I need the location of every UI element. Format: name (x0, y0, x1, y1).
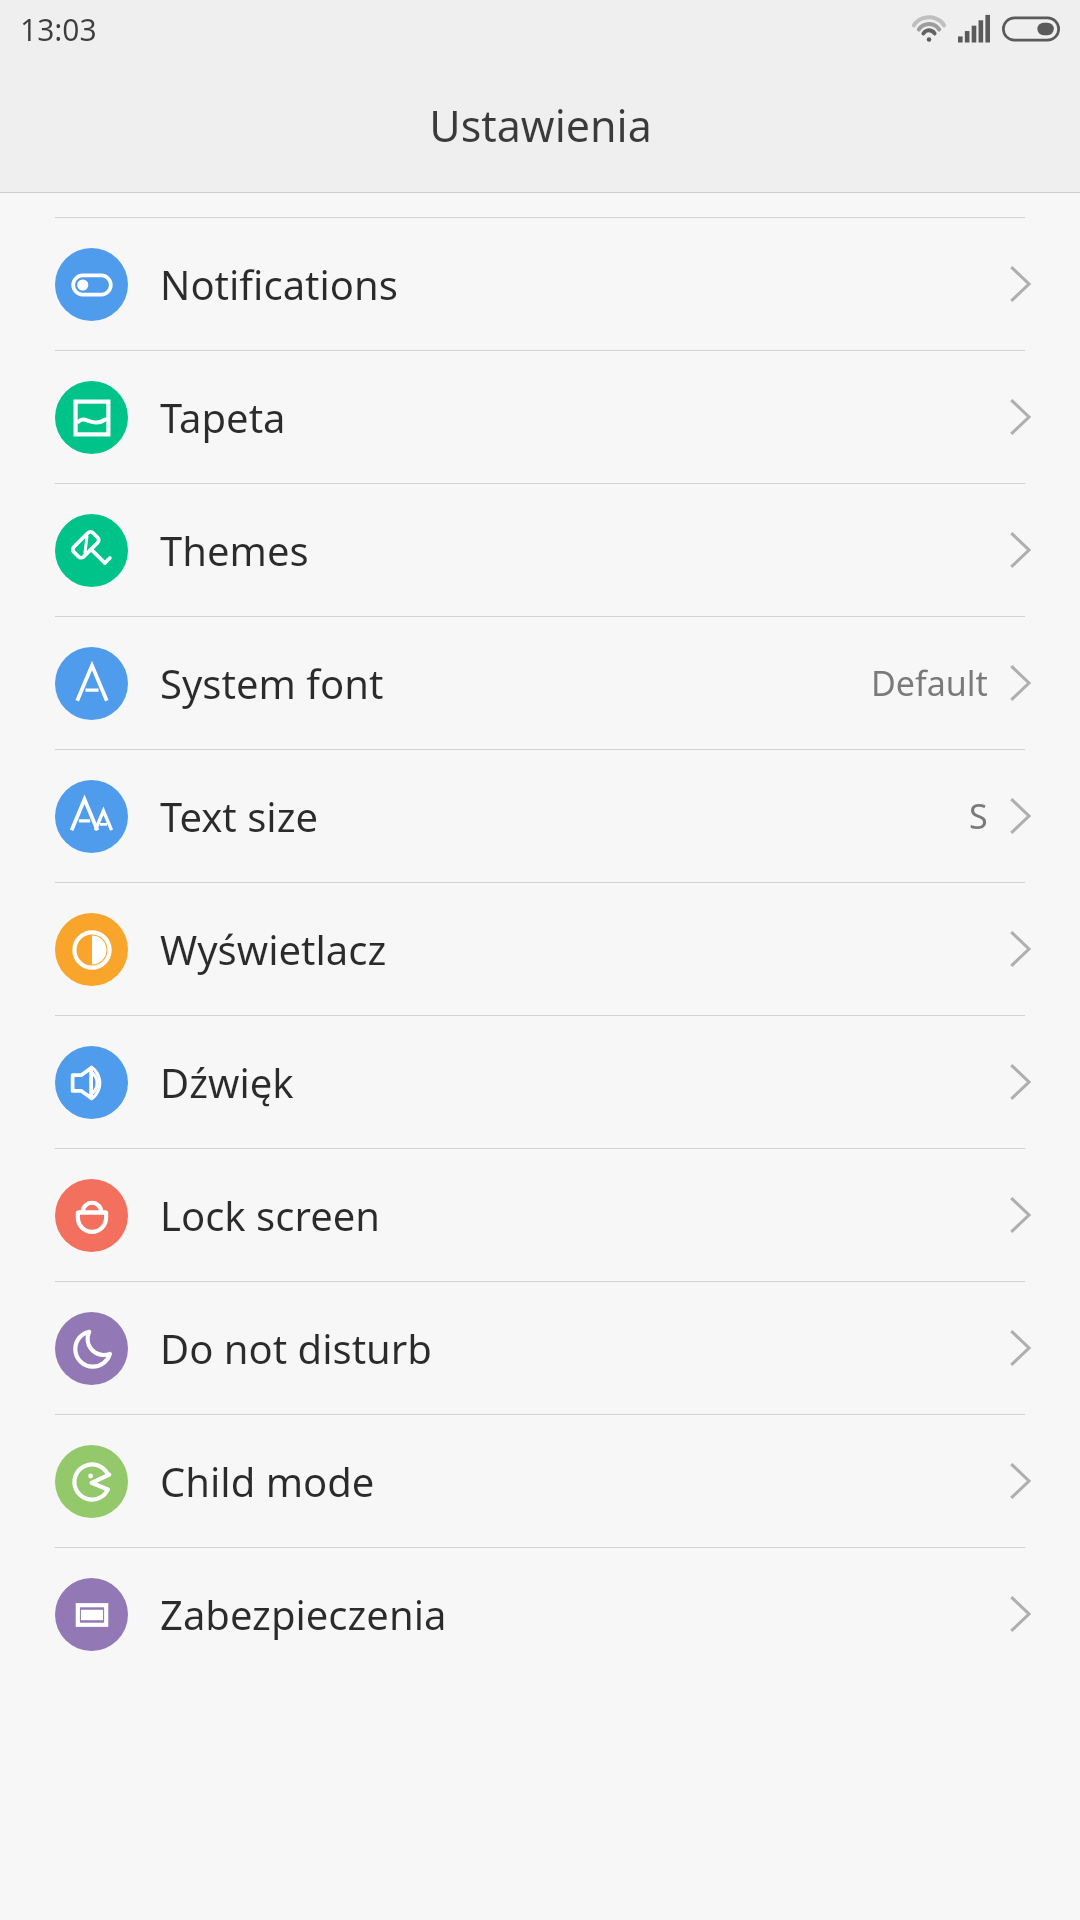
button[interactable]: Child mode (0, 1415, 1080, 1547)
staticText: Default (871, 660, 988, 706)
staticText: Wyświetlacz (160, 922, 1010, 976)
staticText: Dźwięk (160, 1055, 1010, 1109)
staticText: Themes (160, 523, 1010, 577)
button[interactable]: Lock screen (0, 1149, 1080, 1281)
staticText: Text size (160, 789, 969, 843)
staticText: Child mode (160, 1454, 1010, 1508)
button[interactable]: System font (0, 617, 1080, 749)
button[interactable]: Wyświetlacz (0, 883, 1080, 1015)
staticText: S (969, 793, 988, 839)
button[interactable]: Zabezpieczenia (0, 1548, 1080, 1680)
button[interactable]: Notifications (0, 218, 1080, 350)
staticText: System font (160, 656, 871, 710)
staticText: Notifications (160, 257, 1010, 311)
staticText: 13:03 (20, 9, 97, 50)
button[interactable]: Themes (0, 484, 1080, 616)
button[interactable]: Text size (0, 750, 1080, 882)
staticText: Ustawienia (429, 96, 652, 155)
staticText: Do not disturb (160, 1321, 1010, 1375)
staticText: Lock screen (160, 1188, 1010, 1242)
button[interactable]: Do not disturb (0, 1282, 1080, 1414)
staticText: Tapeta (160, 390, 1010, 444)
button[interactable]: Dźwięk (0, 1016, 1080, 1148)
staticText: Zabezpieczenia (160, 1587, 1010, 1641)
button[interactable]: Tapeta (0, 351, 1080, 483)
